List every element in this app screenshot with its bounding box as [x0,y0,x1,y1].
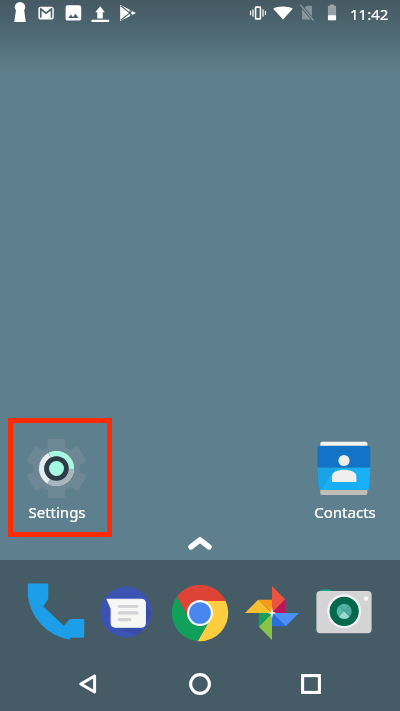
button[interactable]: Recents [283,658,339,710]
staticText: Settings [28,502,86,522]
button[interactable]: Messages [90,578,162,646]
button[interactable]: All apps [184,532,216,554]
button[interactable]: Contacts [302,430,388,526]
button[interactable]: Settings [14,430,100,526]
button[interactable]: Back [61,658,117,710]
staticText: Contacts [314,502,376,522]
button[interactable]: Chrome [164,579,236,647]
button[interactable]: Home [172,658,228,710]
button[interactable]: Phone [19,577,91,645]
button[interactable]: Photos [236,579,308,647]
staticText: 11:42 [350,4,389,24]
button[interactable]: Camera [309,578,381,646]
